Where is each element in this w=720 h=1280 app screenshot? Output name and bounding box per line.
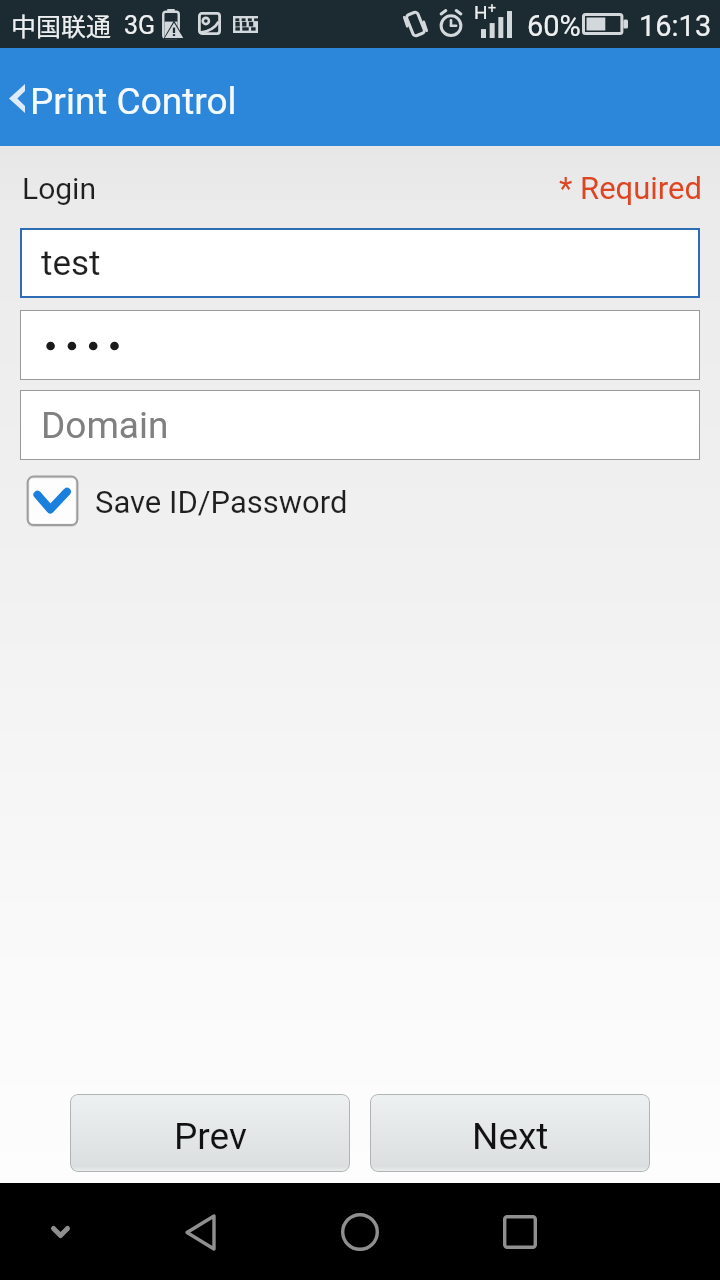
staticText: 3G	[124, 11, 156, 40]
button[interactable]: test	[20, 228, 700, 298]
button[interactable]: Next	[370, 1094, 650, 1172]
staticText: 中国联通	[11, 7, 112, 43]
staticText: Login	[22, 171, 96, 206]
staticText: +	[488, 0, 496, 16]
button[interactable]: Prev	[70, 1094, 350, 1172]
staticText: * Required	[559, 170, 702, 206]
staticText: 60%	[527, 9, 581, 43]
button[interactable]: Domain	[20, 390, 700, 460]
staticText: Next	[472, 1115, 549, 1158]
staticText: H	[474, 1, 488, 23]
button[interactable]: Home	[336, 1208, 384, 1256]
staticText: Print Control	[30, 80, 237, 123]
button[interactable]	[20, 310, 700, 380]
button[interactable]: Back	[176, 1208, 224, 1256]
button[interactable]: Back	[6, 78, 28, 124]
staticText: Save ID/Password	[95, 484, 348, 520]
button[interactable]: Save ID/Password	[27, 476, 78, 527]
button[interactable]: Recent apps	[496, 1208, 544, 1256]
button[interactable]: Hide keyboard	[36, 1208, 84, 1256]
staticText: 16:13	[639, 9, 712, 43]
staticText: test	[41, 243, 101, 284]
staticText: Domain	[41, 404, 169, 447]
staticText: Prev	[174, 1115, 247, 1158]
